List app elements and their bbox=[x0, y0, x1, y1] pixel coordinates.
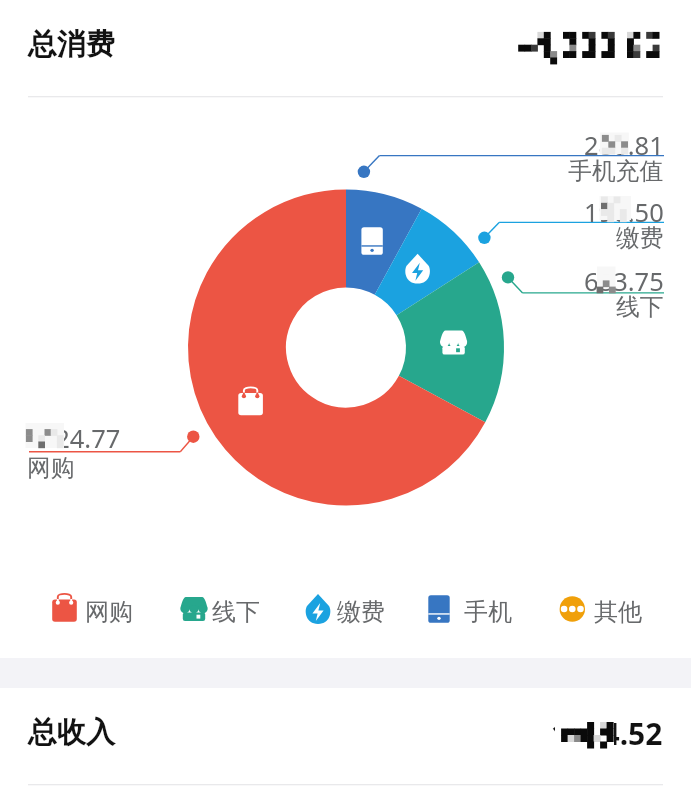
staticText: 缴费 bbox=[616, 223, 664, 253]
staticText: 手机充值 bbox=[568, 156, 664, 186]
staticText: 网购 bbox=[85, 597, 133, 627]
staticText: 手机 bbox=[464, 597, 512, 627]
staticText: 其他 bbox=[594, 597, 642, 627]
staticText: 缴费 bbox=[337, 597, 385, 627]
staticText: 线下 bbox=[212, 597, 260, 627]
staticText: 683.75 bbox=[584, 264, 664, 299]
staticText: 线下 bbox=[616, 292, 664, 322]
button[interactable]: 总消费 bbox=[0, 0, 691, 97]
button[interactable]: 总收入 bbox=[0, 688, 691, 784]
staticText: 1234.52 bbox=[551, 713, 663, 754]
staticText: 196.50 bbox=[584, 195, 664, 230]
staticText: 总消费 bbox=[28, 26, 115, 63]
staticText: 网购 bbox=[27, 453, 75, 483]
staticText: 4124.77 bbox=[26, 421, 121, 456]
staticText: 288.81 bbox=[584, 128, 664, 163]
staticText: 总收入 bbox=[28, 714, 115, 751]
